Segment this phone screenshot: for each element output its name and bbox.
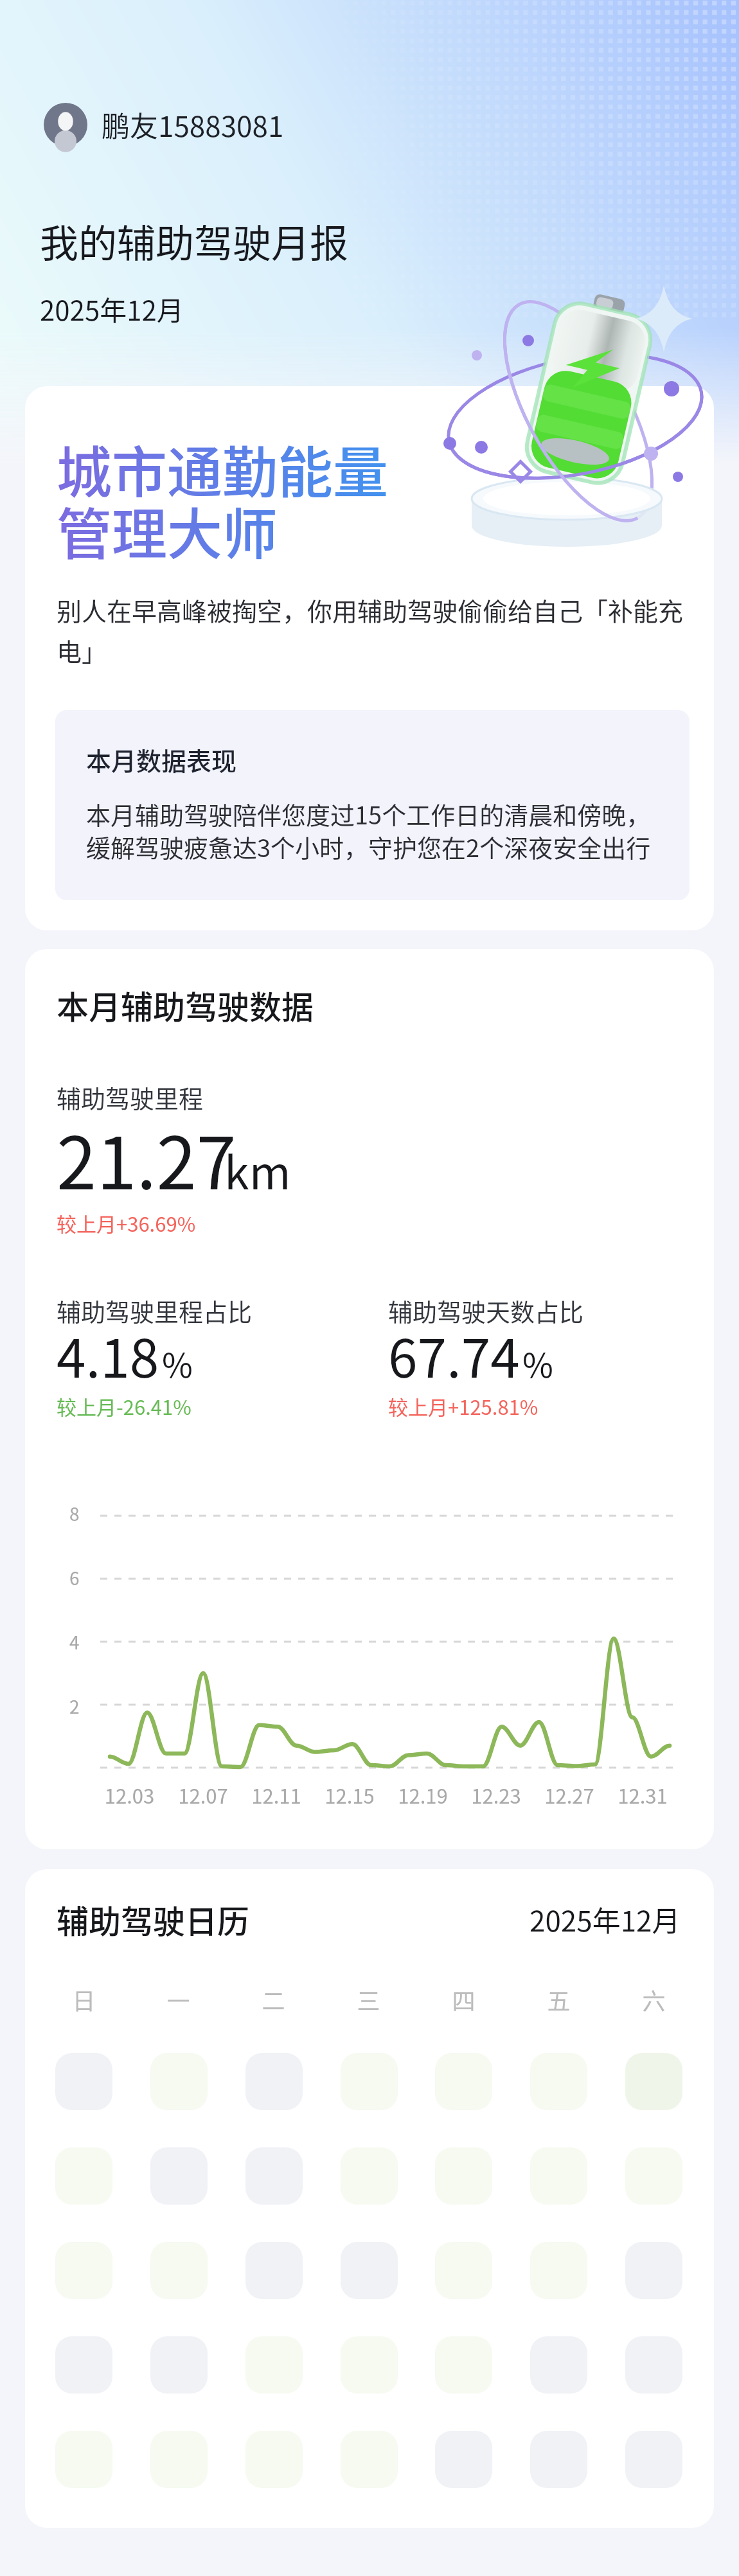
staticText: 四 (435, 1983, 492, 2016)
staticText: 12.27 (533, 1781, 606, 1809)
staticText: 二 (245, 1983, 302, 2016)
button[interactable] (245, 2147, 303, 2205)
button[interactable] (55, 2336, 112, 2394)
button[interactable] (625, 2431, 682, 2488)
button[interactable] (530, 2147, 587, 2205)
staticText: % (522, 1339, 553, 1387)
staticText: 我的辅助驾驶月报 (40, 213, 348, 269)
staticText: 12.19 (386, 1781, 459, 1809)
staticText: 4.18 (57, 1317, 159, 1393)
button[interactable] (435, 2431, 492, 2488)
staticText: 21.27 (57, 1106, 236, 1210)
button[interactable] (55, 2147, 112, 2205)
staticText: km (224, 1137, 291, 1202)
staticText: 2025年12月 (530, 1899, 681, 1940)
button[interactable] (150, 2147, 208, 2205)
button[interactable] (530, 2431, 587, 2488)
staticText: 12.31 (606, 1781, 679, 1809)
staticText: 2 (69, 1693, 80, 1719)
staticText: 辅助驾驶里程 (57, 1079, 204, 1115)
button[interactable] (341, 2147, 398, 2205)
staticText: 2025年12月 (40, 289, 184, 328)
staticText: 12.11 (240, 1781, 313, 1809)
button[interactable] (625, 2147, 682, 2205)
staticText: 12.03 (93, 1781, 166, 1809)
staticText: 本月辅助驾驶数据 (57, 982, 314, 1028)
button[interactable] (435, 2147, 492, 2205)
button[interactable] (625, 2336, 682, 2394)
staticText: 较上月+36.69% (57, 1209, 196, 1238)
button[interactable] (341, 2431, 398, 2488)
button[interactable] (625, 2242, 682, 2299)
staticText: 辅助驾驶里程占比 (57, 1293, 253, 1328)
staticText: 12.23 (459, 1781, 533, 1809)
button[interactable] (150, 2053, 208, 2110)
button[interactable] (435, 2242, 492, 2299)
staticText: 12.07 (166, 1781, 240, 1809)
button[interactable] (245, 2053, 303, 2110)
button[interactable] (150, 2431, 208, 2488)
button[interactable] (150, 2242, 208, 2299)
staticText: 三 (340, 1983, 397, 2016)
staticText: 本月数据表现 (86, 742, 237, 777)
staticText: 别人在早高峰被掏空，你用辅助驾驶偷偷给自己「补能充电」 (57, 592, 688, 668)
button[interactable] (530, 2053, 587, 2110)
button[interactable] (55, 2053, 112, 2110)
button[interactable] (341, 2242, 398, 2299)
button[interactable] (55, 2242, 112, 2299)
staticText: 本月辅助驾驶陪伴您度过15个工作日的清晨和傍晚，缓解驾驶疲惫达3个小时，守护您在… (86, 796, 665, 864)
button[interactable] (435, 2053, 492, 2110)
button[interactable] (245, 2431, 303, 2488)
staticText: 8 (69, 1500, 80, 1527)
staticText: 4 (69, 1629, 80, 1655)
staticText: 较上月+125.81% (388, 1392, 539, 1421)
staticText: % (162, 1339, 193, 1387)
button[interactable] (341, 2336, 398, 2394)
staticText: 辅助驾驶天数占比 (388, 1293, 584, 1328)
staticText: 较上月-26.41% (57, 1392, 191, 1421)
staticText: 城市通勤能量 管理大师 (57, 429, 388, 571)
staticText: 6 (69, 1565, 80, 1591)
button[interactable]: 鹏友15883081 (44, 103, 284, 147)
staticText: 一 (150, 1983, 207, 2016)
staticText: 日 (55, 1983, 112, 2016)
staticText: 12.15 (313, 1781, 386, 1809)
staticText: 67.74 (388, 1317, 520, 1393)
button[interactable] (341, 2053, 398, 2110)
button[interactable] (150, 2336, 208, 2394)
staticText: 五 (530, 1983, 587, 2016)
staticText: 鹏友15883081 (102, 104, 284, 145)
staticText: 六 (625, 1983, 682, 2016)
button[interactable] (625, 2053, 682, 2110)
button[interactable] (245, 2242, 303, 2299)
staticText: 辅助驾驶日历 (57, 1896, 249, 1942)
button[interactable] (530, 2242, 587, 2299)
button[interactable] (530, 2336, 587, 2394)
button[interactable] (245, 2336, 303, 2394)
button[interactable] (435, 2336, 492, 2394)
button[interactable] (55, 2431, 112, 2488)
